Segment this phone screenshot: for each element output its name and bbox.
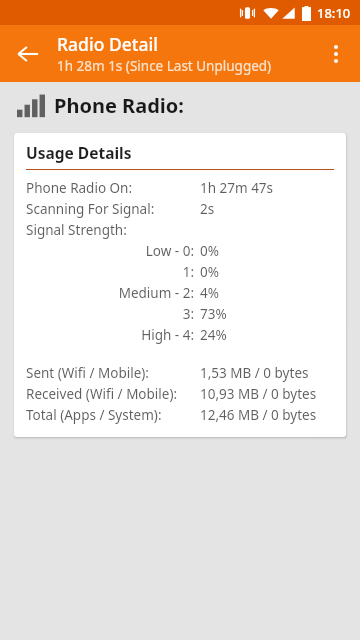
staticText: 1h 27m 47s — [200, 179, 274, 197]
staticText: High - 4: — [26, 326, 194, 344]
staticText: Phone Radio: — [54, 92, 184, 119]
staticText: Usage Details — [26, 142, 132, 163]
staticText: 0% — [200, 263, 219, 281]
staticText: 2s — [200, 200, 215, 218]
staticText: Total (Apps / System): — [26, 406, 194, 424]
staticText: 4% — [200, 284, 219, 302]
staticText: 1,53 MB / 0 bytes — [200, 364, 309, 382]
staticText: Sent (Wifi / Mobile): — [26, 364, 194, 382]
staticText: Signal Strength: — [26, 221, 194, 239]
staticText: Radio Detail — [57, 32, 158, 56]
button[interactable]: More options — [315, 33, 357, 75]
staticText: 1: — [26, 263, 194, 281]
staticText: Low - 0: — [26, 242, 194, 260]
staticText: 73% — [200, 305, 227, 323]
button[interactable]: Back — [5, 31, 51, 77]
staticText: 18:10 — [317, 4, 351, 22]
staticText: Phone Radio On: — [26, 179, 194, 197]
staticText: Scanning For Signal: — [26, 200, 194, 218]
staticText: 3: — [26, 305, 194, 323]
staticText: 10,93 MB / 0 bytes — [200, 385, 317, 403]
staticText: 24% — [200, 326, 227, 344]
staticText: Medium - 2: — [26, 284, 194, 302]
staticText: 0% — [200, 242, 219, 260]
staticText: 12,46 MB / 0 bytes — [200, 406, 317, 424]
staticText: Received (Wifi / Mobile): — [26, 385, 194, 403]
staticText: 1h 28m 1s (Since Last Unplugged) — [57, 57, 272, 75]
